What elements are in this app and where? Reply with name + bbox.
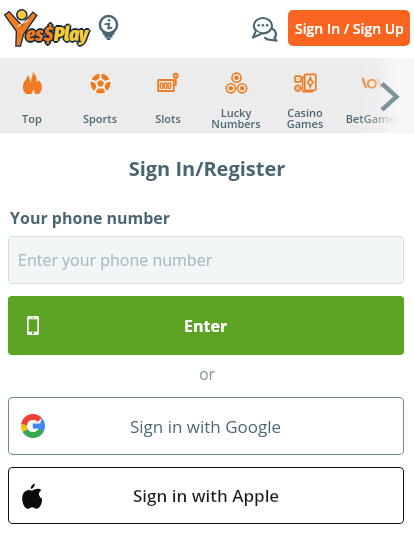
staticText: $ — [45, 22, 55, 45]
staticText: es — [26, 22, 44, 45]
staticText: Slots — [131, 111, 205, 126]
staticText: Sign in with Apple — [133, 484, 280, 507]
staticText: Play — [54, 22, 89, 45]
button[interactable]: Sign in with Apple — [8, 467, 404, 524]
staticText: es — [26, 23, 44, 46]
staticText: Play — [54, 24, 89, 47]
button[interactable]: Enter — [8, 296, 404, 355]
button[interactable]: More categories — [379, 81, 403, 113]
staticText: Your phone number — [10, 207, 171, 229]
button[interactable]: BetGames — [336, 58, 410, 133]
staticText: $ — [42, 23, 52, 46]
staticText: Play — [52, 23, 87, 46]
staticText: es — [25, 22, 43, 45]
staticText: es — [27, 24, 45, 47]
staticText: Play — [55, 23, 90, 46]
staticText: Sign in with Google — [130, 415, 282, 438]
button[interactable]: Chat support — [250, 14, 280, 44]
staticText: es — [26, 24, 44, 47]
button[interactable]: YesPlay home — [2, 9, 86, 47]
staticText: es — [27, 23, 45, 46]
button[interactable]: Sign In / Sign Up — [288, 10, 410, 46]
button[interactable]: Slots — [131, 58, 205, 133]
staticText: $ — [45, 23, 55, 46]
staticText: Sign In/Register — [0, 155, 414, 182]
staticText: BetGames — [336, 111, 410, 126]
staticText: Lucky Numbers — [199, 105, 273, 131]
button[interactable]: Lucky Numbers — [199, 58, 273, 133]
button[interactable]: Sign in with Google — [8, 397, 404, 455]
staticText: $ — [43, 22, 53, 45]
staticText: Sign In / Sign Up — [295, 19, 404, 38]
staticText: es — [24, 23, 42, 46]
button[interactable]: Enter your phone number — [8, 236, 404, 284]
button[interactable]: Sports — [63, 58, 137, 133]
staticText: es — [27, 22, 45, 45]
staticText: $ — [44, 23, 54, 46]
staticText: Enter — [184, 315, 228, 337]
staticText: $ — [45, 24, 55, 47]
staticText: $ — [44, 21, 54, 44]
staticText: es — [25, 24, 43, 47]
staticText: Casino Games — [268, 105, 342, 131]
staticText: Play — [56, 23, 91, 46]
staticText: $ — [46, 23, 56, 46]
button[interactable]: Top — [0, 58, 69, 133]
staticText: Play — [54, 21, 89, 44]
staticText: es — [25, 23, 43, 46]
staticText: Play — [55, 24, 90, 47]
staticText: Top — [0, 111, 69, 126]
staticText: $ — [43, 24, 53, 47]
staticText: $ — [44, 25, 54, 48]
staticText: Play — [54, 25, 89, 48]
staticText: Enter your phone number — [18, 249, 213, 271]
staticText: es — [26, 25, 44, 48]
staticText: Play — [53, 24, 88, 47]
staticText: Play — [54, 23, 89, 46]
staticText: Sports — [63, 111, 137, 126]
staticText: or — [0, 363, 414, 385]
staticText: $ — [44, 22, 54, 45]
staticText: Play — [55, 22, 90, 45]
staticText: $ — [43, 23, 53, 46]
staticText: es — [26, 21, 44, 44]
staticText: es — [28, 23, 46, 46]
button[interactable]: Casino Games — [268, 58, 342, 133]
button[interactable]: Info — [95, 15, 121, 41]
staticText: Play — [53, 22, 88, 45]
staticText: Play — [53, 23, 88, 46]
staticText: $ — [44, 24, 54, 47]
